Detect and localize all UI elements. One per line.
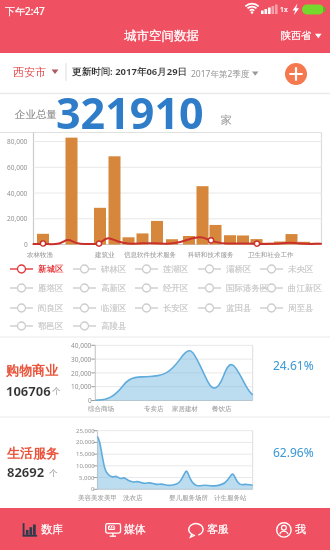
staticText: 20,000 [71,369,92,378]
button[interactable]: 周至县 [260,300,314,316]
staticText: 1x [280,5,288,15]
button[interactable]: 国际港务区 [198,280,269,296]
button[interactable]: 经开区 [135,280,189,296]
staticText: 经开区 [163,283,189,294]
button[interactable]: 鄠邑区 [10,318,64,334]
staticText: 80,000 [7,137,28,146]
staticText: 碑林区 [101,264,127,275]
staticText: 20,000 [7,214,28,223]
staticText: 下午2:47 [5,4,45,18]
staticText: 2017年第2季度 [191,68,250,80]
staticText: 个 [52,386,61,397]
staticText: 40,000 [71,341,92,350]
staticText: 美容美发美甲 [78,494,117,502]
staticText: 25,000 [76,427,95,435]
staticText: 高陵县 [101,321,127,332]
staticText: 临潼区 [101,303,127,314]
staticText: 莲湖区 [163,264,189,275]
button[interactable]: 高新区 [73,280,127,296]
staticText: 国际港务区 [226,283,269,294]
staticText: 个 [49,468,58,479]
staticText: 灞桥区 [226,264,252,275]
staticText: 60,000 [7,163,28,172]
staticText: 洗衣店 [123,494,143,502]
staticText: 专卖店 [144,405,164,413]
staticText: 信息软件技术服务 [124,251,176,259]
staticText: 餐饮店 [212,405,232,413]
button[interactable]: 碑林区 [73,261,127,277]
staticText: 曲江新区 [288,283,322,294]
staticText: 0 [91,485,95,493]
staticText: 生活服务 [7,445,59,461]
button[interactable]: 高陵县 [73,318,127,334]
staticText: 0 [24,240,28,249]
button[interactable]: 雁塔区 [10,280,64,296]
staticText: 30,000 [71,355,92,364]
staticText: 陕西省 [281,29,311,42]
button[interactable]: 2017年第2季度 [187,62,263,86]
staticText: 购物商业 [6,362,58,378]
staticText: 综合商场 [88,405,114,413]
staticText: 10,000 [71,382,92,391]
staticText: 卫生和社会工作 [248,251,294,259]
button[interactable] [285,63,307,85]
staticText: 媒体 [124,522,146,536]
staticText: 企业总量 [15,108,57,121]
staticText: 鄠邑区 [38,321,64,332]
button[interactable]: 客服 [166,508,249,550]
button[interactable]: 西安市 [8,58,63,86]
staticText: 家 [221,113,232,127]
staticText: 5,000 [79,474,95,482]
staticText: 农林牧渔 [27,251,53,259]
button[interactable]: 数库 [0,508,83,550]
staticText: 106706 [6,382,51,400]
staticText: 我 [295,522,306,536]
staticText: 婴儿服务场所 [169,494,208,502]
staticText: 数库 [41,522,63,536]
staticText: 雁塔区 [38,283,64,294]
staticText: 62.96% [273,444,314,460]
staticText: 蓝田县 [226,303,252,314]
staticText: 计生服务站 [214,494,247,502]
staticText: 周至县 [288,303,314,314]
staticText: 长安区 [163,303,189,314]
staticText: 0 [88,396,92,405]
staticText: 20,000 [76,438,95,446]
button[interactable]: 曲江新区 [260,280,322,296]
button[interactable]: 长安区 [135,300,189,316]
staticText: 城市空间数据 [124,28,199,44]
staticText: 24.61% [273,357,314,373]
staticText: 客服 [207,522,229,536]
button[interactable]: 未央区 [260,261,314,277]
staticText: 建筑业 [95,251,115,259]
button[interactable]: 陕西省 [276,22,328,48]
staticText: 科研和技术服务 [188,251,234,259]
staticText: 新城区 [38,264,64,275]
button[interactable]: AD [83,508,166,550]
staticText: 321910 [56,83,204,142]
staticText: 10,000 [76,462,95,470]
staticText: 未央区 [288,264,314,275]
button[interactable]: 莲湖区 [135,261,189,277]
staticText: 西安市 [13,65,46,79]
button[interactable]: 我 [249,508,330,550]
button[interactable]: 新城区 [10,261,64,277]
staticText: 82692 [7,463,45,481]
staticText: AD [109,525,115,530]
staticText: 阎良区 [38,303,64,314]
staticText: 40,000 [7,189,28,198]
staticText: 15,000 [76,450,95,458]
staticText: 高新区 [101,283,127,294]
staticText: 更新时间: 2017年06月29日 [72,65,188,78]
button[interactable]: 临潼区 [73,300,127,316]
button[interactable]: 灞桥区 [198,261,252,277]
button[interactable]: 蓝田县 [198,300,252,316]
button[interactable]: 阎良区 [10,300,64,316]
staticText: 家居建材 [172,405,198,413]
